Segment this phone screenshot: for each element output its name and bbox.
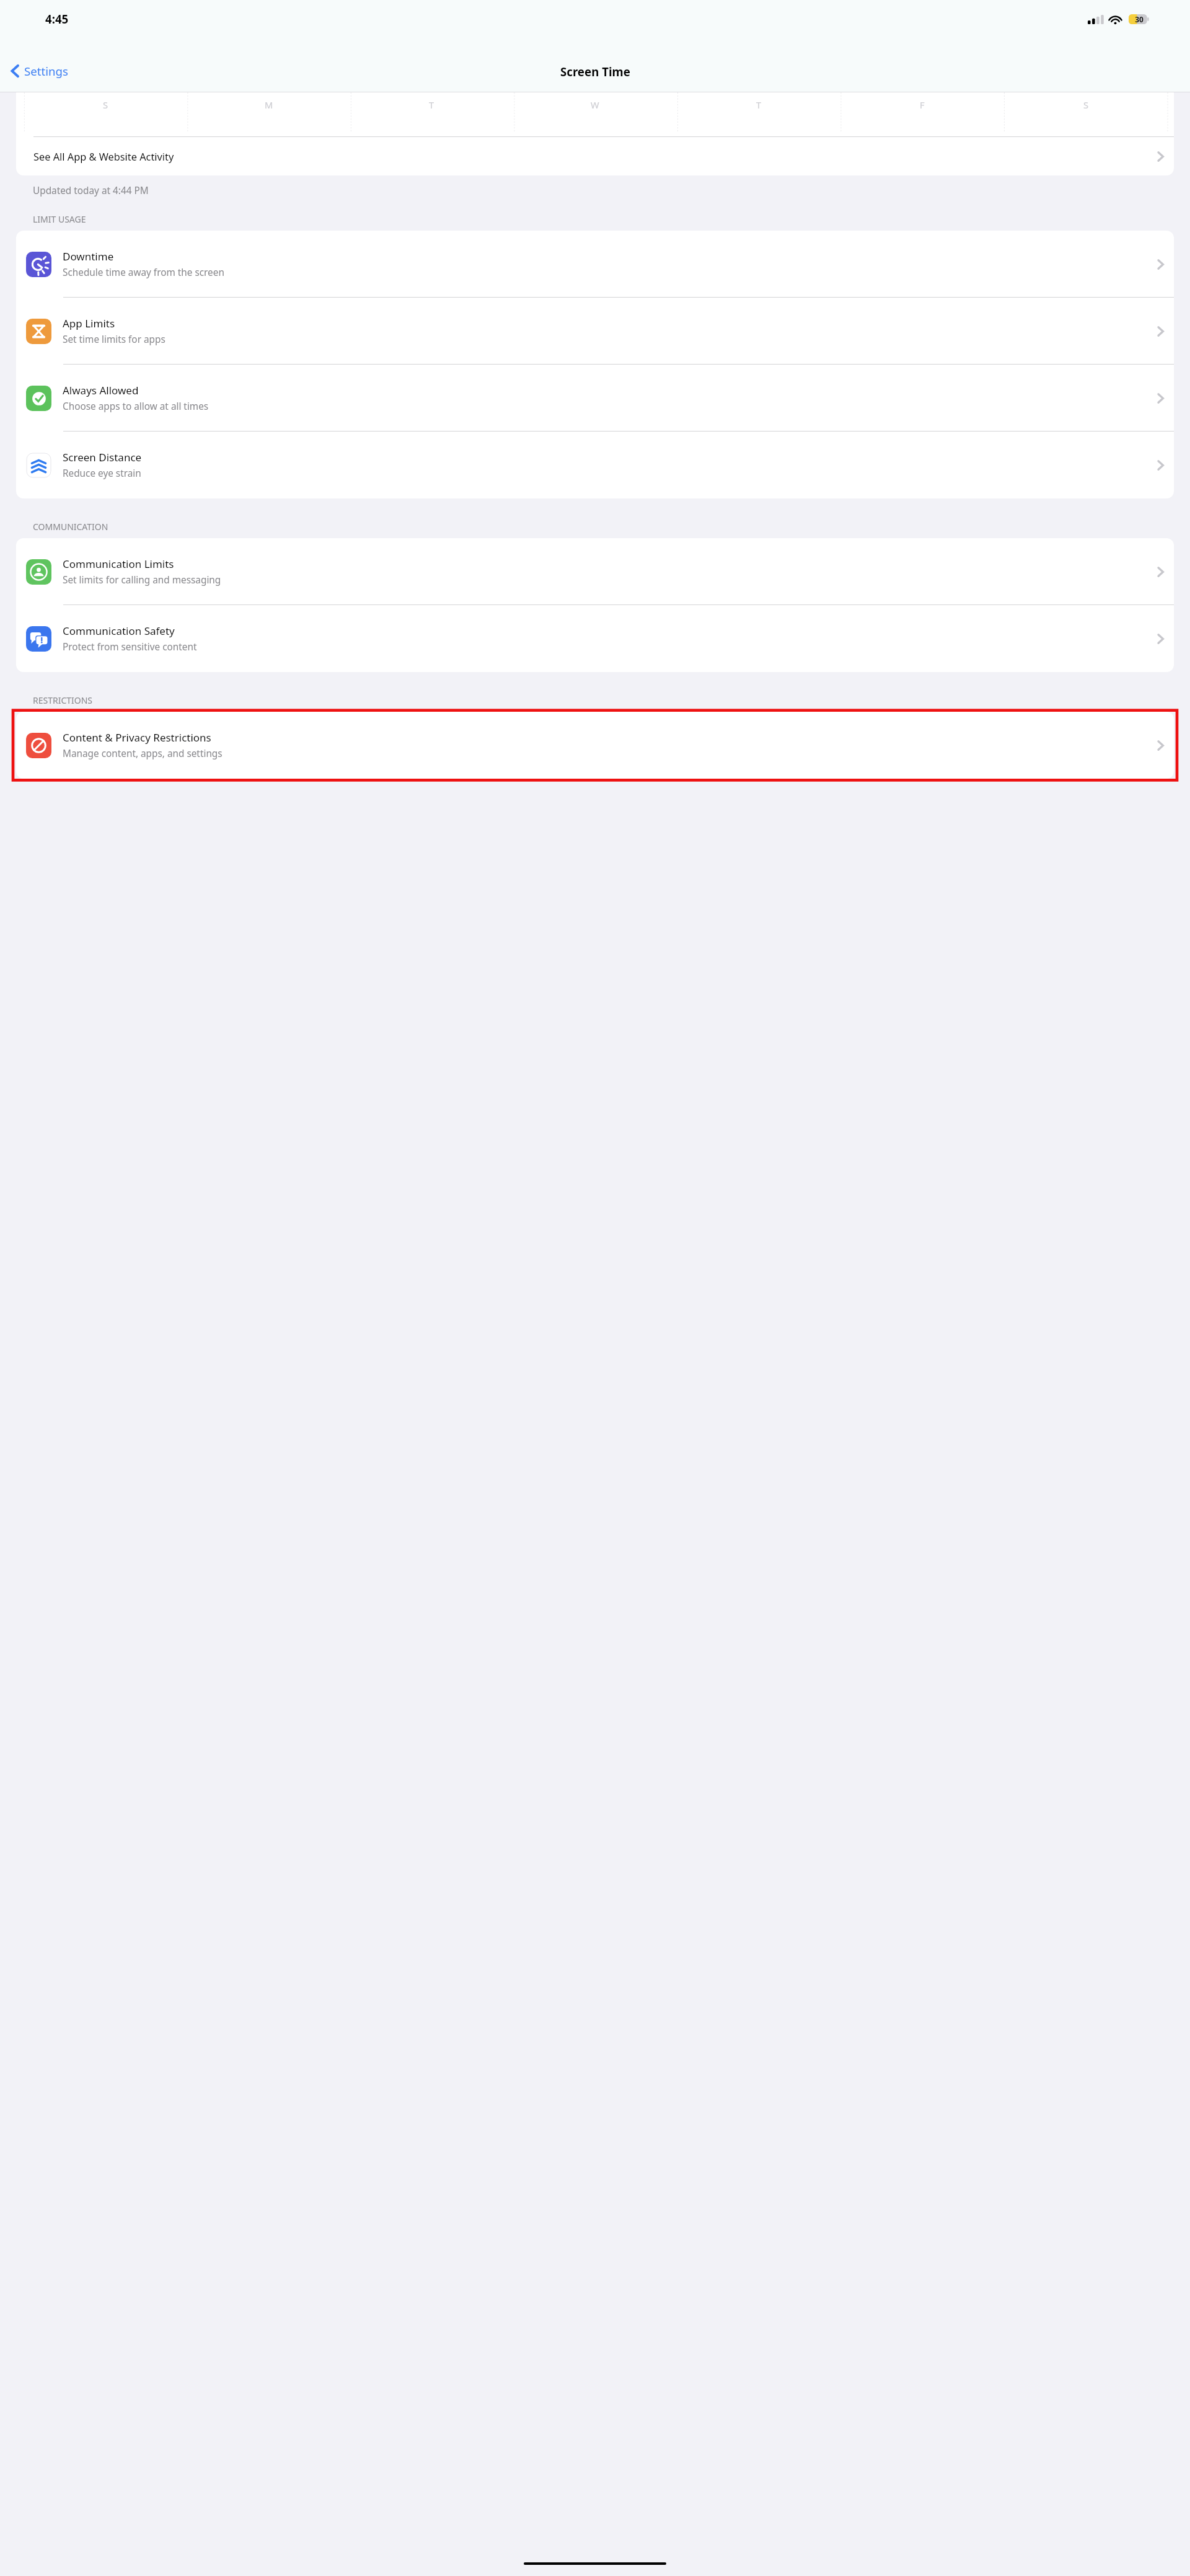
staticText: Schedule time away from the screen [63,266,224,279]
staticText: Manage content, apps, and settings [63,747,223,760]
staticText: Choose apps to allow at all times [63,400,209,413]
staticText: Settings [24,63,68,79]
staticText: Reduce eye strain [63,467,141,480]
staticText: Always Allowed [63,383,139,397]
staticText: 30 [1135,14,1144,24]
staticText: W [591,99,599,111]
button[interactable]: Always Allowed [16,365,1174,432]
staticText: See All App & Website Activity [33,150,174,164]
staticText: Communication Limits [63,557,174,571]
button[interactable]: Communication Safety [16,605,1174,672]
staticText: Set limits for calling and messaging [63,573,221,586]
staticText: 4:45 [45,11,69,27]
staticText: M [265,99,273,111]
staticText: Protect from sensitive content [63,640,197,653]
staticText: RESTRICTIONS [33,694,93,706]
staticText: F [920,99,925,111]
button[interactable]: Communication Limits [16,538,1174,605]
staticText: Content & Privacy Restrictions [63,730,211,745]
staticText: S [1083,99,1089,111]
staticText: Communication Safety [63,624,175,638]
button[interactable]: App Limits [16,298,1174,365]
staticText: T [756,99,762,111]
button[interactable]: Content & Privacy Restrictions [16,712,1174,779]
staticText: Updated today at 4:44 PM [33,184,149,197]
staticText: Set time limits for apps [63,333,165,346]
staticText: LIMIT USAGE [33,213,86,225]
button[interactable]: Downtime [16,231,1174,298]
button[interactable]: Screen Distance [16,432,1174,498]
staticText: Screen Distance [63,450,142,464]
button[interactable]: See All App & Website Activity [16,136,1174,175]
staticText: Downtime [63,249,114,263]
staticText: COMMUNICATION [33,521,108,533]
staticText: S [103,99,108,111]
button[interactable]: Settings [9,61,70,81]
staticText: T [429,99,434,111]
staticText: App Limits [63,316,115,330]
staticText: Screen Time [560,64,630,79]
